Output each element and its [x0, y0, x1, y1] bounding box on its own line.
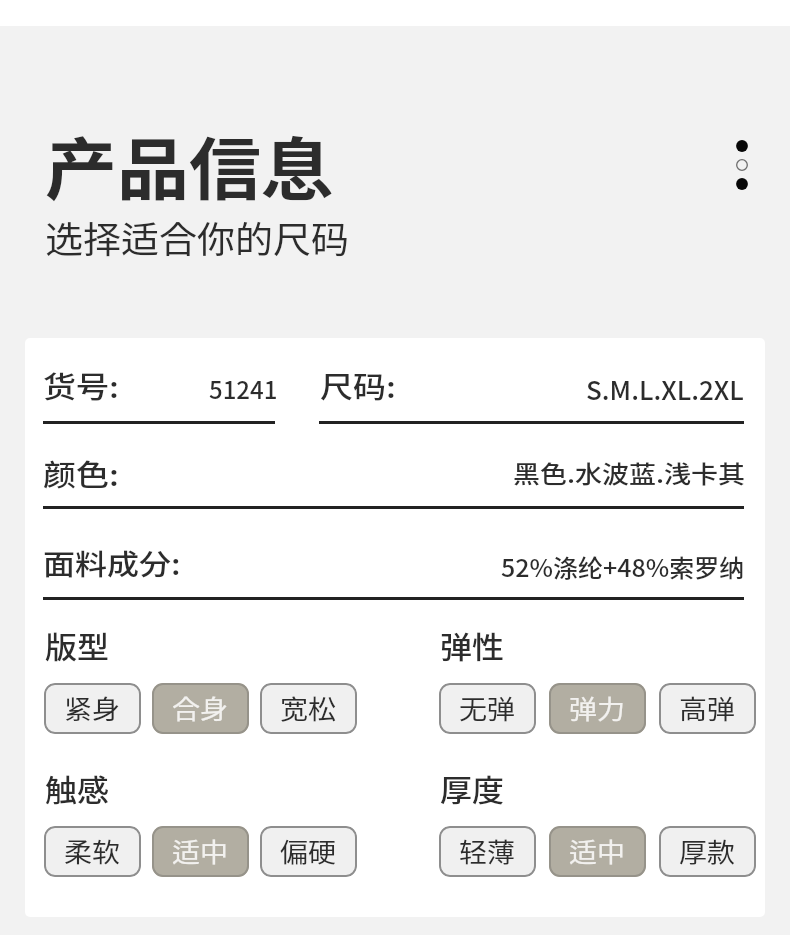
staticText: 适中: [172, 833, 229, 870]
staticText: 版型: [45, 624, 110, 666]
button[interactable]: 宽松: [260, 683, 357, 734]
staticText: 颜色:: [43, 453, 119, 495]
button[interactable]: 高弹: [659, 683, 756, 734]
staticText: 合身: [172, 690, 229, 727]
staticText: 高弹: [679, 690, 736, 727]
staticText: 轻薄: [459, 833, 516, 870]
staticText: 51241: [209, 371, 278, 406]
staticText: 厚度: [440, 767, 505, 809]
button[interactable]: 厚款: [659, 826, 756, 877]
button[interactable]: More options: [718, 123, 766, 207]
staticText: 偏硬: [280, 833, 337, 870]
button[interactable]: 适中: [152, 826, 249, 877]
staticText: 无弹: [459, 690, 516, 727]
staticText: 柔软: [64, 833, 121, 870]
staticText: 面料成分:: [43, 542, 181, 583]
staticText: 弹性: [440, 624, 505, 666]
staticText: 紧身: [64, 690, 121, 727]
button[interactable]: 合身: [152, 683, 249, 734]
staticText: 宽松: [280, 690, 337, 727]
staticText: 厚款: [679, 833, 736, 870]
staticText: 52%涤纶+48%索罗纳: [501, 549, 745, 583]
button[interactable]: 轻薄: [439, 826, 536, 877]
button[interactable]: 柔软: [44, 826, 141, 877]
staticText: 尺码:: [320, 365, 396, 407]
staticText: 弹力: [569, 690, 626, 727]
staticText: 产品信息: [45, 116, 334, 213]
button[interactable]: 适中: [549, 826, 646, 877]
button[interactable]: 紧身: [44, 683, 141, 734]
staticText: 货号:: [43, 365, 119, 407]
button[interactable]: 偏硬: [260, 826, 357, 877]
staticText: 触感: [45, 767, 110, 809]
staticText: 适中: [569, 833, 626, 870]
button[interactable]: 无弹: [439, 683, 536, 734]
button[interactable]: 弹力: [549, 683, 646, 734]
staticText: 选择适合你的尺码: [45, 211, 350, 264]
staticText: S.M.L.XL.2XL: [586, 370, 744, 408]
staticText: 黑色.水波蓝.浅卡其: [513, 456, 746, 490]
